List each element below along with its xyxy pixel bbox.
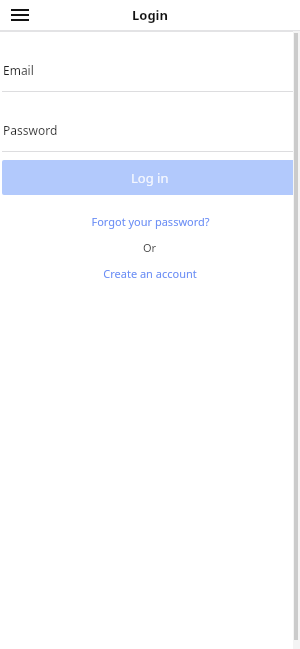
staticText: Forgot your password? bbox=[91, 214, 210, 229]
button[interactable]: Email bbox=[0, 60, 300, 92]
staticText: Log in bbox=[131, 169, 169, 187]
button[interactable]: Log in bbox=[2, 160, 298, 195]
button[interactable]: Open navigation menu bbox=[5, 1, 35, 29]
button[interactable]: Forgot your password? bbox=[0, 212, 300, 230]
button[interactable]: Password bbox=[0, 120, 300, 152]
staticText: Email bbox=[3, 62, 34, 78]
button[interactable]: Create an account bbox=[0, 264, 300, 282]
staticText: Password bbox=[3, 122, 58, 138]
staticText: Or bbox=[143, 240, 157, 255]
staticText: Login bbox=[132, 6, 168, 24]
staticText: Create an account bbox=[103, 266, 197, 281]
